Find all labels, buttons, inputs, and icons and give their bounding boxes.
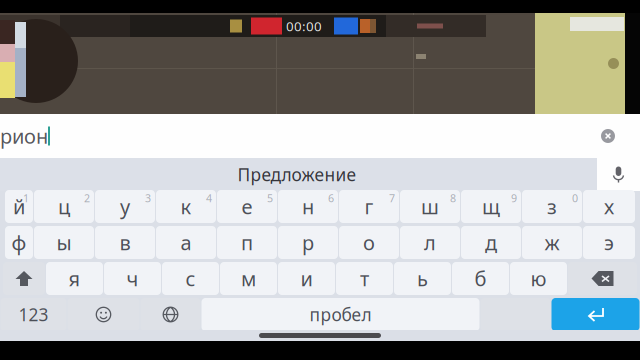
staticText: 4 — [206, 191, 212, 205]
staticText: х — [604, 193, 614, 220]
button[interactable]: Next keyboard — [140, 298, 200, 331]
button[interactable]: т — [336, 262, 393, 295]
button[interactable]: я — [46, 262, 103, 295]
button[interactable]: 2 — [34, 190, 94, 223]
button[interactable]: и — [278, 262, 335, 295]
button[interactable]: Clear text — [595, 123, 621, 149]
button[interactable]: ф — [5, 226, 33, 259]
button[interactable]: Предложение — [222, 160, 372, 188]
button[interactable]: Shift — [3, 262, 45, 295]
staticText: у — [120, 193, 130, 220]
staticText: ц — [58, 193, 70, 220]
button[interactable]: 0 — [522, 190, 582, 223]
button[interactable]: р — [278, 226, 338, 259]
button[interactable]: ч — [104, 262, 161, 295]
button[interactable]: д — [461, 226, 521, 259]
staticText: 00:00 — [286, 17, 322, 35]
staticText: и — [300, 265, 312, 292]
staticText: л — [424, 229, 436, 256]
button[interactable]: 6 — [278, 190, 338, 223]
button[interactable]: с — [162, 262, 219, 295]
staticText: м — [241, 265, 256, 292]
button[interactable]: ы — [34, 226, 94, 259]
staticText: 7 — [389, 191, 395, 205]
button[interactable]: ь — [394, 262, 451, 295]
button[interactable]: л — [400, 226, 460, 259]
button[interactable]: 123 — [0, 298, 66, 331]
button[interactable]: о — [339, 226, 399, 259]
button[interactable]: 7 — [339, 190, 399, 223]
button[interactable]: м — [220, 262, 277, 295]
staticText: 9 — [511, 191, 517, 205]
staticText: п — [241, 229, 253, 256]
staticText: с — [185, 265, 195, 292]
staticText: 0 — [572, 191, 578, 205]
staticText: 5 — [267, 191, 273, 205]
button[interactable]: п — [217, 226, 277, 259]
staticText: ы — [56, 229, 71, 256]
staticText: т — [360, 265, 369, 292]
staticText: к — [180, 193, 191, 220]
button[interactable]: 1 — [5, 190, 33, 223]
button[interactable]: 8 — [400, 190, 460, 223]
staticText: р — [302, 229, 314, 256]
button[interactable]: 4 — [156, 190, 216, 223]
staticText: н — [302, 193, 314, 220]
button[interactable]: Delete — [568, 262, 637, 295]
staticText: 8 — [450, 191, 456, 205]
button[interactable]: Search — [551, 298, 639, 331]
staticText: з — [547, 193, 557, 220]
staticText: ю — [530, 265, 546, 292]
button[interactable]: 5 — [217, 190, 277, 223]
staticText: д — [485, 229, 497, 256]
button[interactable]: Emoji — [67, 298, 139, 331]
staticText: б — [474, 265, 486, 292]
staticText: е — [241, 193, 252, 220]
button[interactable]: пробел — [201, 298, 479, 331]
button[interactable]: в — [95, 226, 155, 259]
staticText: 6 — [328, 191, 334, 205]
staticText: 1 — [23, 191, 29, 205]
staticText: Предложение — [237, 163, 356, 186]
staticText: о — [363, 229, 375, 256]
staticText: г — [364, 193, 373, 220]
staticText: я — [68, 265, 80, 292]
staticText: ж — [544, 229, 559, 256]
button[interactable]: ж — [522, 226, 582, 259]
staticText: 2 — [84, 191, 90, 205]
staticText: й — [13, 193, 25, 220]
staticText: рион — [0, 123, 48, 149]
button[interactable]: а — [156, 226, 216, 259]
staticText: в — [119, 229, 130, 256]
button[interactable]: х — [583, 190, 635, 223]
button[interactable]: Dictation — [597, 158, 640, 191]
button[interactable]: 9 — [461, 190, 521, 223]
staticText: 123 — [18, 303, 48, 326]
staticText: ф — [11, 229, 26, 256]
staticText: ч — [126, 265, 138, 292]
button[interactable]: б — [452, 262, 509, 295]
staticText: а — [180, 229, 191, 256]
button[interactable]: э — [583, 226, 635, 259]
staticText: э — [604, 229, 614, 256]
button[interactable]: ю — [510, 262, 567, 295]
staticText: ь — [417, 265, 428, 292]
staticText: щ — [482, 193, 500, 220]
staticText: 3 — [145, 191, 151, 205]
staticText: ш — [421, 193, 439, 220]
staticText: пробел — [309, 303, 371, 326]
button[interactable]: 3 — [95, 190, 155, 223]
